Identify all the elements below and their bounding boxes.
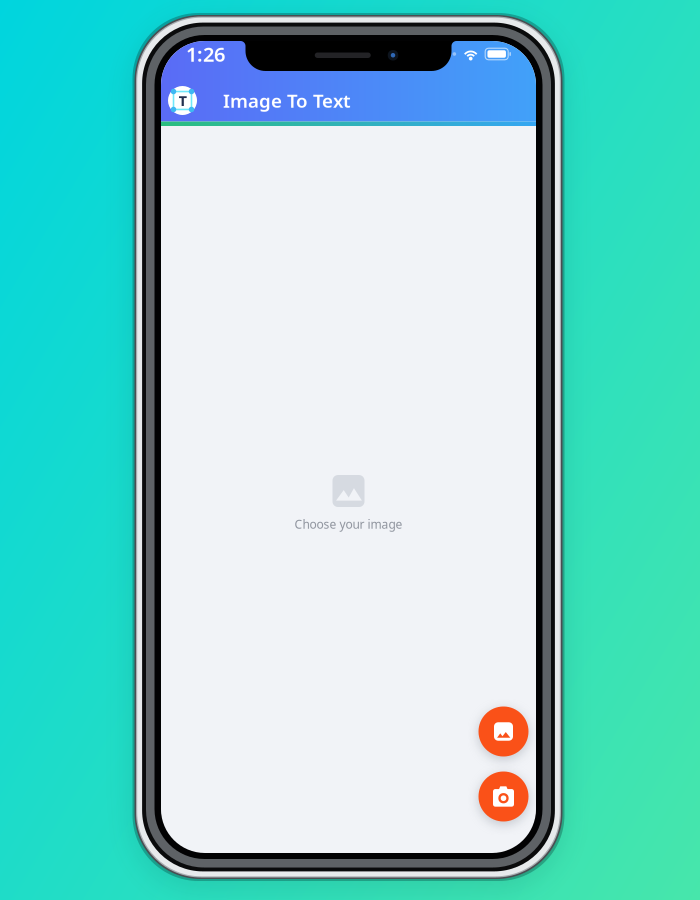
staticText: Choose your image [294, 516, 402, 532]
button[interactable]: T [161, 81, 358, 120]
staticText: 1:26 [186, 41, 225, 67]
staticText: T [178, 91, 186, 110]
staticText: Image To Text [223, 88, 351, 113]
button[interactable]: Choose image from gallery [478, 706, 528, 756]
button[interactable]: Take a photo [478, 771, 528, 821]
